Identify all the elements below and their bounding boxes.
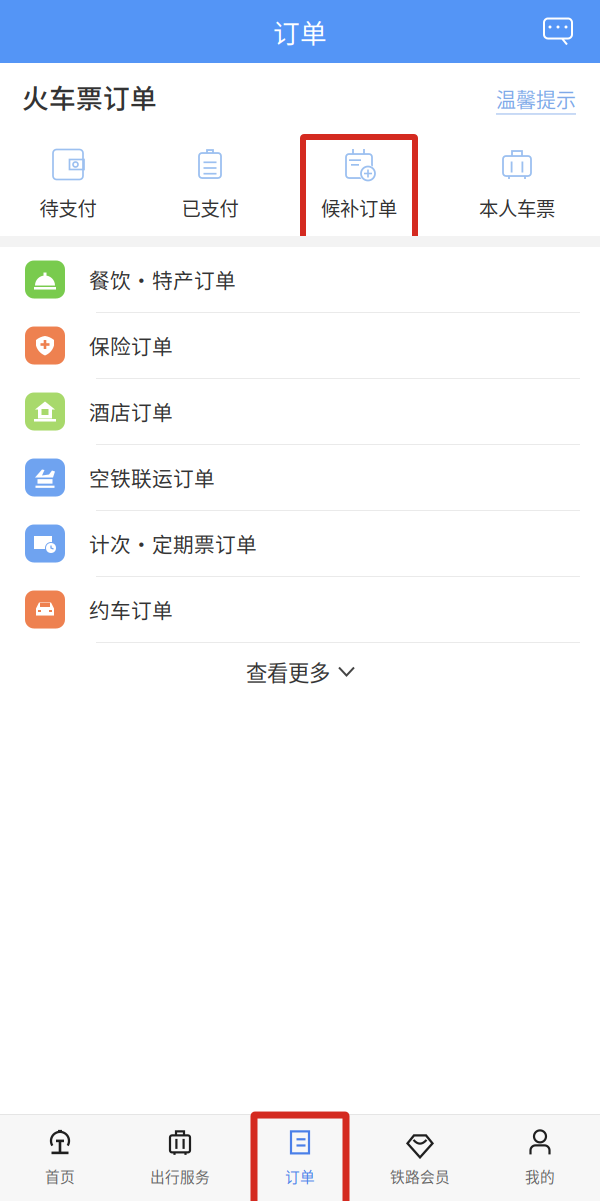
staticText: 首页 [45, 1165, 75, 1187]
staticText: 温馨提示 [496, 84, 576, 113]
button[interactable]: 出行服务 [120, 1115, 240, 1201]
button[interactable]: 首页 [0, 1115, 120, 1201]
button[interactable]: 餐饮·特产订单 [0, 247, 600, 313]
button[interactable]: 计次·定期票订单 [0, 511, 600, 577]
staticText: 查看更多 [246, 656, 330, 687]
staticText: 约车订单 [89, 594, 173, 624]
button[interactable]: 本人车票 [434, 134, 600, 236]
button[interactable]: 消息 [534, 7, 582, 55]
staticText: 本人车票 [479, 193, 555, 221]
button[interactable]: 空铁联运订单 [0, 445, 600, 511]
button[interactable]: 已支付 [136, 134, 284, 236]
button[interactable]: 我的 [480, 1115, 600, 1201]
staticText: 火车票订单 [22, 77, 157, 116]
staticText: 待支付 [39, 193, 96, 221]
button[interactable]: 温馨提示 [496, 78, 576, 114]
staticText: 订单 [285, 1165, 315, 1187]
staticText: 我的 [525, 1165, 555, 1187]
staticText: 候补订单 [321, 193, 397, 221]
staticText: 已支付 [181, 193, 238, 221]
button[interactable]: 酒店订单 [0, 379, 600, 445]
staticText: 酒店订单 [89, 396, 173, 426]
staticText: 保险订单 [89, 330, 173, 360]
staticText: 餐饮·特产订单 [89, 264, 236, 294]
button[interactable]: 候补订单 [284, 134, 434, 236]
staticText: 计次·定期票订单 [89, 528, 257, 558]
button[interactable]: 保险订单 [0, 313, 600, 379]
staticText: 空铁联运订单 [89, 462, 215, 492]
button[interactable]: 查看更多 [0, 643, 600, 700]
button[interactable]: 订单 [240, 1115, 360, 1201]
staticText: 出行服务 [150, 1165, 210, 1187]
button[interactable]: 约车订单 [0, 577, 600, 643]
staticText: 订单 [273, 12, 327, 51]
button[interactable]: 待支付 [0, 134, 136, 236]
button[interactable]: 铁路会员 [360, 1115, 480, 1201]
staticText: 铁路会员 [390, 1165, 450, 1187]
